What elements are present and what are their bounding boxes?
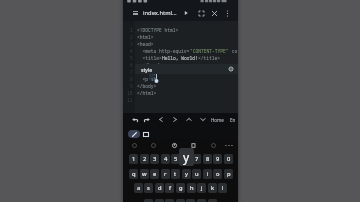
staticText: 2 bbox=[143, 155, 147, 163]
staticText: y bbox=[185, 170, 188, 178]
button[interactable]: u bbox=[192, 169, 201, 179]
button[interactable]: z bbox=[144, 199, 153, 202]
button[interactable]: Draw bbox=[128, 130, 140, 138]
button[interactable]: Move up bbox=[183, 113, 195, 126]
staticText: 8 bbox=[130, 76, 133, 82]
staticText: Home bbox=[211, 117, 224, 123]
button[interactable]: d bbox=[155, 183, 164, 193]
staticText: <meta http-equiv= bbox=[137, 48, 190, 54]
button[interactable]: 3 bbox=[150, 154, 159, 164]
staticText: 5 bbox=[174, 155, 178, 163]
staticText: </html> bbox=[137, 90, 157, 96]
button[interactable]: 9 bbox=[213, 154, 222, 164]
staticText: h bbox=[190, 184, 194, 192]
button[interactable]: Select area bbox=[143, 131, 149, 137]
button[interactable]: 8 bbox=[203, 154, 212, 164]
staticText: index.html… bbox=[143, 9, 177, 17]
button[interactable]: i bbox=[203, 169, 212, 179]
button[interactable]: t bbox=[171, 169, 180, 179]
button[interactable]: a bbox=[134, 183, 143, 193]
button[interactable]: k bbox=[208, 183, 217, 193]
button[interactable]: Move right bbox=[169, 113, 181, 126]
button[interactable]: w bbox=[140, 169, 149, 179]
button[interactable]: 0 bbox=[224, 154, 233, 164]
button[interactable]: 1 bbox=[129, 154, 138, 164]
staticText: </body> bbox=[137, 83, 157, 89]
staticText: p bbox=[227, 170, 231, 178]
button[interactable]: y bbox=[182, 169, 191, 179]
button[interactable]: 2 bbox=[140, 154, 149, 164]
staticText: o bbox=[216, 170, 220, 178]
staticText: t bbox=[174, 170, 177, 178]
staticText: f bbox=[169, 184, 171, 192]
staticText: st bbox=[151, 76, 157, 82]
staticText: g bbox=[179, 184, 183, 192]
button[interactable]: 4 bbox=[161, 154, 170, 164]
button[interactable]: More options bbox=[221, 5, 233, 21]
button[interactable]: Keyboard tool 2 bbox=[148, 140, 158, 150]
staticText: u bbox=[195, 170, 199, 178]
staticText: 0 bbox=[227, 155, 231, 163]
button[interactable]: Documentation bbox=[228, 66, 234, 72]
button[interactable]: Keyboard tool 1 bbox=[129, 140, 139, 150]
button[interactable]: c bbox=[165, 199, 174, 202]
button[interactable]: f bbox=[165, 183, 174, 193]
button[interactable]: v bbox=[176, 199, 185, 202]
button[interactable]: En bbox=[228, 113, 238, 126]
button[interactable]: x bbox=[155, 199, 164, 202]
staticText: style bbox=[141, 66, 153, 73]
button[interactable]: Enter fullscreen bbox=[195, 5, 207, 21]
button[interactable]: Run bbox=[180, 5, 192, 21]
button[interactable]: l bbox=[218, 183, 227, 193]
staticText: s bbox=[147, 184, 150, 192]
button[interactable]: h bbox=[187, 183, 196, 193]
staticText: 6 bbox=[185, 155, 189, 163]
button[interactable]: 7 bbox=[192, 154, 201, 164]
staticText: 8 bbox=[206, 155, 210, 163]
button[interactable]: Open navigation menu bbox=[129, 5, 142, 21]
staticText: 7 bbox=[195, 155, 199, 163]
staticText: 2 bbox=[130, 34, 133, 40]
button[interactable]: m bbox=[208, 199, 217, 202]
button[interactable]: q bbox=[129, 169, 138, 179]
button[interactable]: Close file bbox=[208, 5, 220, 21]
staticText: 6 bbox=[130, 62, 133, 68]
staticText: con bbox=[229, 48, 238, 54]
button[interactable]: Keyboard tool 4 bbox=[188, 140, 198, 150]
button[interactable]: Keyboard tool 5 bbox=[208, 140, 218, 150]
staticText: Hello, World! bbox=[162, 55, 198, 61]
button[interactable]: Keyboard tool 3 bbox=[169, 140, 179, 150]
button[interactable]: style bbox=[135, 64, 238, 74]
button[interactable]: g bbox=[176, 183, 185, 193]
button[interactable]: Move down bbox=[197, 113, 209, 126]
button[interactable]: 6 bbox=[182, 154, 191, 164]
staticText: </title> bbox=[198, 55, 221, 61]
button[interactable]: More keyboard options bbox=[224, 140, 234, 150]
button[interactable]: p bbox=[224, 169, 233, 179]
staticText: 10 bbox=[127, 90, 133, 96]
button[interactable]: Redo bbox=[141, 113, 153, 126]
button[interactable]: o bbox=[213, 169, 222, 179]
staticText: 9 bbox=[216, 155, 220, 163]
button[interactable]: s bbox=[144, 183, 153, 193]
staticText: <p bbox=[137, 76, 151, 82]
staticText: 11 bbox=[127, 97, 133, 103]
button[interactable]: n bbox=[197, 199, 206, 202]
staticText: 1 bbox=[130, 27, 133, 33]
button[interactable]: b bbox=[186, 199, 195, 202]
button[interactable]: e bbox=[150, 169, 159, 179]
button[interactable]: Home bbox=[210, 113, 225, 126]
button[interactable]: 5 bbox=[171, 154, 180, 164]
button[interactable]: r bbox=[161, 169, 170, 179]
staticText: <title> bbox=[137, 55, 162, 61]
button[interactable]: Move left bbox=[155, 113, 167, 126]
button[interactable]: j bbox=[197, 183, 206, 193]
staticText: 5 bbox=[130, 55, 133, 61]
staticText: 3 bbox=[130, 41, 133, 47]
button[interactable]: Undo bbox=[129, 113, 141, 126]
